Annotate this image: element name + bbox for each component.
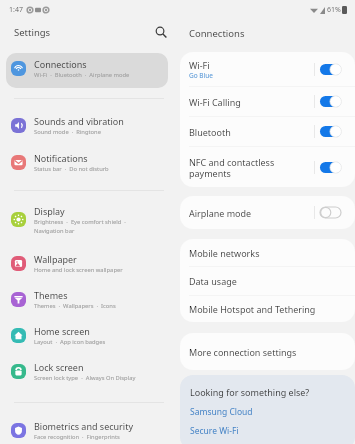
- staticText: Data usage: [189, 275, 237, 287]
- staticText: Display: [34, 205, 65, 217]
- staticText: Looking for something else?: [190, 386, 310, 398]
- button[interactable]: Wi-Fi: [180, 52, 355, 86]
- staticText: 1:47: [9, 5, 23, 15]
- staticText: 61%: [327, 5, 341, 15]
- staticText: Face recognition · Fingerprints: [34, 433, 120, 441]
- staticText: Themes · Wallpapers · Icons: [34, 302, 116, 310]
- staticText: Themes: [34, 289, 68, 301]
- button[interactable]: Turn on: [320, 207, 341, 218]
- button[interactable]: Connections: [6, 50, 168, 87]
- button[interactable]: Samsung Cloud: [190, 406, 253, 418]
- staticText: Layout · App icon badges: [34, 338, 106, 346]
- staticText: Screen lock type · Always On Display: [34, 374, 136, 382]
- button[interactable]: Sounds and vibration: [6, 108, 168, 143]
- button[interactable]: Lock screen: [6, 354, 168, 389]
- button[interactable]: Home screen: [6, 318, 168, 353]
- staticText: Status bar · Do not disturb: [34, 165, 109, 173]
- staticText: Go Blue: [189, 71, 213, 80]
- staticText: Wi-Fi Calling: [189, 96, 241, 108]
- button[interactable]: More connection settings: [180, 333, 355, 370]
- staticText: Settings: [14, 26, 51, 39]
- staticText: NFC and contactless payments: [189, 156, 275, 179]
- staticText: Wallpaper: [34, 253, 77, 265]
- button[interactable]: Search: [152, 23, 170, 41]
- button[interactable]: Secure Wi-Fi: [190, 425, 239, 437]
- staticText: Connections: [34, 58, 87, 70]
- staticText: Wi-Fi · Bluetooth · Airplane mode: [34, 71, 130, 79]
- staticText: Airplane mode: [189, 207, 252, 219]
- button[interactable]: Wi-Fi Calling: [180, 87, 355, 116]
- button[interactable]: Biometrics and security: [6, 413, 168, 444]
- button[interactable]: Bluetooth: [180, 117, 355, 146]
- staticText: Notifications: [34, 152, 88, 164]
- button[interactable]: Display: [6, 197, 168, 241]
- staticText: Bluetooth: [189, 126, 231, 138]
- staticText: Sounds and vibration: [34, 115, 124, 127]
- staticText: Connections: [189, 27, 245, 40]
- staticText: More connection settings: [189, 346, 297, 358]
- staticText: Mobile Hotspot and Tethering: [189, 303, 316, 315]
- staticText: Sound mode · Ringtone: [34, 128, 101, 136]
- button[interactable]: Mobile Hotspot and Tethering: [180, 296, 355, 322]
- button[interactable]: Turn off: [320, 64, 341, 75]
- button[interactable]: Airplane mode: [180, 196, 355, 229]
- staticText: Mobile networks: [189, 247, 260, 259]
- button[interactable]: Wallpaper: [6, 246, 168, 281]
- staticText: Lock screen: [34, 361, 84, 373]
- staticText: Home screen: [34, 325, 90, 337]
- button[interactable]: Turn off: [320, 96, 341, 107]
- button[interactable]: Data usage: [180, 267, 355, 295]
- staticText: Biometrics and security: [34, 420, 134, 432]
- button[interactable]: Mobile networks: [180, 239, 355, 266]
- staticText: Brightness · Eye comfort shield · Naviga…: [34, 218, 126, 234]
- button[interactable]: Notifications: [6, 145, 168, 180]
- button[interactable]: Turn off: [320, 162, 341, 173]
- staticText: Wi-Fi: [189, 59, 210, 71]
- button[interactable]: NFC and contactless payments: [180, 147, 355, 187]
- button[interactable]: Themes: [6, 282, 168, 317]
- staticText: Home and lock screen wallpaper: [34, 266, 123, 274]
- button[interactable]: Turn off: [320, 126, 341, 137]
